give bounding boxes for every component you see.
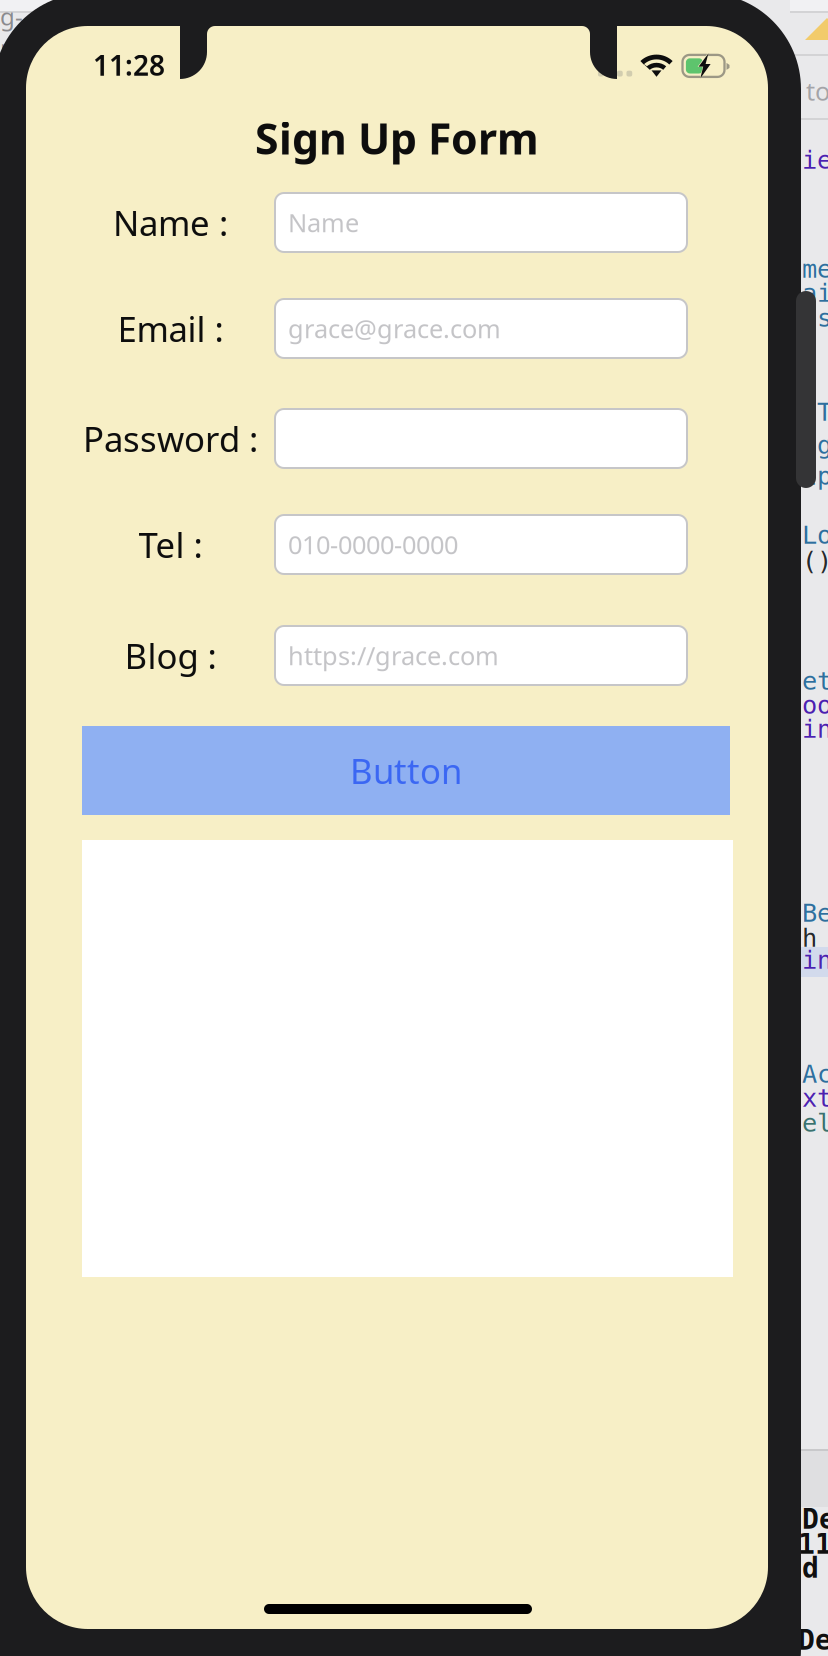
button[interactable] xyxy=(275,409,687,468)
button[interactable]: https://grace.com xyxy=(275,626,687,685)
staticText: 010-0000-0000 xyxy=(288,528,458,561)
staticText: Lo xyxy=(802,520,828,550)
button[interactable]: Name xyxy=(275,193,687,252)
staticText: Be xyxy=(802,898,828,928)
staticText: Tel : xyxy=(138,521,202,567)
staticText: to xyxy=(806,74,828,108)
staticText: Name xyxy=(288,206,359,239)
button[interactable]: 010-0000-0000 xyxy=(275,515,687,574)
staticText: h xyxy=(802,923,817,953)
staticText: oo xyxy=(802,690,828,720)
staticText: grace@grace.com xyxy=(288,312,501,345)
staticText: gn xyxy=(0,0,23,64)
staticText: lT xyxy=(802,397,828,427)
staticText: 112 xyxy=(798,1528,828,1560)
staticText: Password : xyxy=(83,415,258,461)
staticText: Button xyxy=(350,747,462,793)
staticText: () xyxy=(802,546,828,576)
staticText: d xyxy=(802,1552,819,1584)
staticText: el xyxy=(802,1108,828,1138)
staticText: in xyxy=(802,714,828,744)
staticText: tp xyxy=(802,461,828,491)
staticText: og xyxy=(802,430,828,460)
staticText: ie xyxy=(802,145,828,175)
staticText: Name : xyxy=(113,199,228,245)
staticText: me xyxy=(802,254,828,284)
staticText: https://grace.com xyxy=(288,639,499,672)
staticText: Blog : xyxy=(124,632,216,678)
staticText: De xyxy=(798,1624,828,1656)
staticText: Sign Up Form xyxy=(255,110,539,166)
staticText: De xyxy=(802,1503,828,1535)
staticText: et xyxy=(802,666,828,696)
staticText: 11:28 xyxy=(93,46,165,84)
button[interactable]: grace@grace.com xyxy=(275,299,687,358)
staticText: Email : xyxy=(117,305,223,351)
staticText: in xyxy=(802,945,828,975)
staticText: xt xyxy=(802,1083,828,1113)
button[interactable]: Button xyxy=(82,726,730,815)
staticText: ss xyxy=(802,303,828,333)
staticText: ai xyxy=(802,278,828,308)
staticText: Ac xyxy=(802,1059,828,1089)
